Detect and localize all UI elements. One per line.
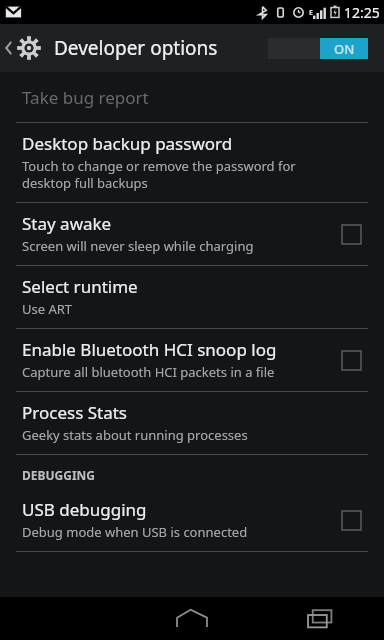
staticText: DEBUGGING [22, 467, 96, 483]
button[interactable]: Stay awake [0, 203, 384, 265]
button[interactable]: Desktop backup password [0, 123, 384, 202]
staticText: Screen will never sleep while charging [22, 237, 254, 255]
staticText: Debug mode when USB is connected [22, 523, 248, 541]
button[interactable]: Back [0, 35, 48, 61]
button[interactable]: USB debugging [0, 489, 384, 551]
staticText: Enable Bluetooth HCI snoop log [22, 338, 277, 361]
staticText: USB debugging [22, 498, 147, 521]
staticText: Process Stats [22, 401, 127, 424]
staticText: Desktop backup password [22, 132, 233, 155]
staticText: Take bug report [22, 86, 149, 109]
staticText: 12:25 [344, 3, 380, 22]
staticText: Capture all bluetooth HCI packets in a f… [22, 363, 275, 381]
staticText: Geeky stats about running processes [22, 426, 248, 444]
button[interactable]: Developer options on [268, 38, 384, 59]
button[interactable]: USB debugging [334, 503, 368, 537]
staticText: Developer options [54, 35, 218, 61]
button[interactable]: Stay awake [334, 217, 368, 251]
staticText: ON [334, 40, 355, 58]
staticText: Touch to change or remove the password f… [22, 157, 296, 192]
staticText: Select runtime [22, 275, 138, 298]
staticText: Use ART [22, 300, 73, 318]
staticText: Stay awake [22, 212, 112, 235]
button[interactable]: Select runtime [0, 266, 384, 328]
button[interactable]: Process Stats [0, 392, 384, 454]
button[interactable]: Recent apps [256, 597, 384, 640]
button[interactable]: Enable Bluetooth HCI snoop log [334, 343, 368, 377]
staticText: E [309, 8, 313, 18]
button[interactable]: Home [128, 597, 256, 640]
button[interactable]: Enable Bluetooth HCI snoop log [0, 329, 384, 391]
button[interactable]: Take bug report [0, 72, 384, 122]
